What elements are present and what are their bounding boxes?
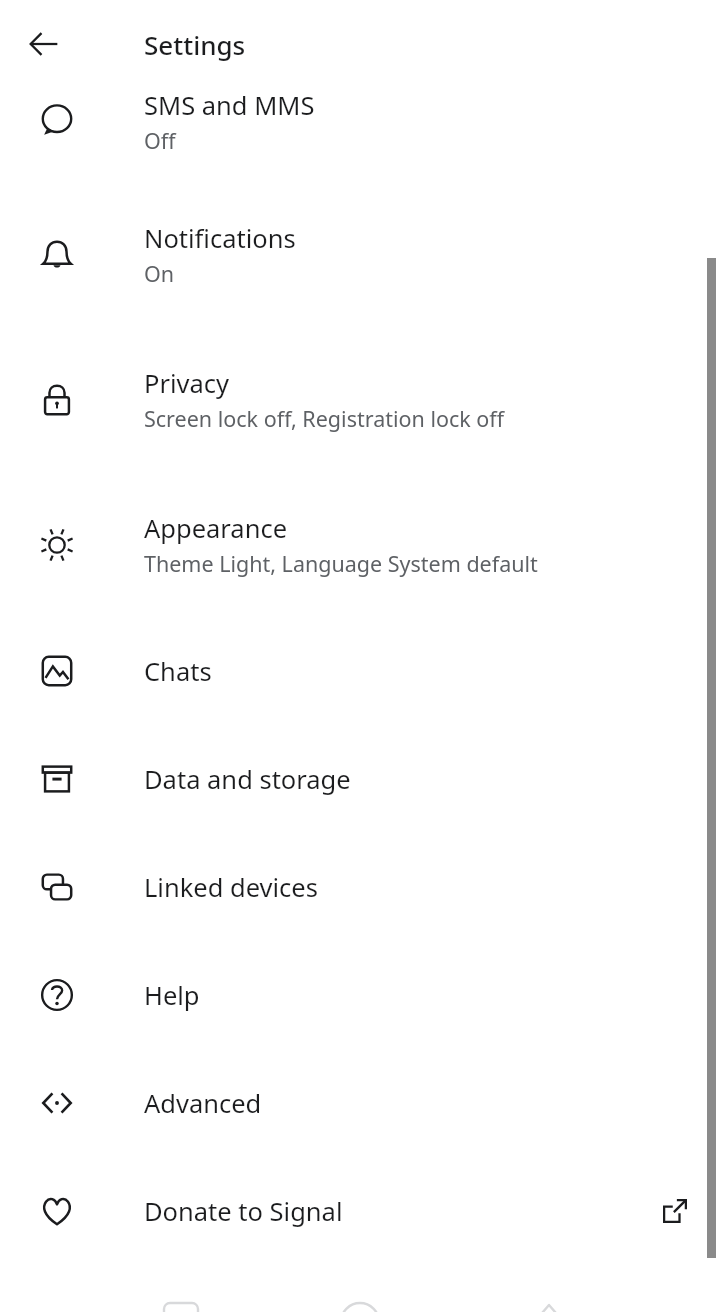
button[interactable]: Chats [0, 617, 720, 725]
button[interactable]: Privacy [0, 327, 720, 472]
button[interactable]: Help [0, 941, 720, 1049]
staticText: Screen lock off, Registration lock off [144, 404, 505, 433]
button[interactable]: SMS and MMS [0, 60, 720, 182]
staticText: Off [144, 126, 176, 155]
staticText: Theme Light, Language System default [144, 549, 538, 578]
button[interactable]: Navigate up [20, 20, 68, 68]
staticText: Help [144, 978, 200, 1013]
staticText: Chats [144, 654, 212, 689]
button[interactable]: Notifications [0, 182, 720, 327]
staticText: Advanced [144, 1086, 262, 1121]
staticText: Notifications [144, 221, 296, 256]
staticText: SMS and MMS [144, 88, 315, 123]
button[interactable]: Linked devices [0, 833, 720, 941]
button[interactable]: Appearance [0, 472, 720, 617]
button[interactable]: Data and storage [0, 725, 720, 833]
staticText: Donate to Signal [144, 1194, 343, 1229]
button[interactable]: Open donate page in browser [647, 1183, 703, 1239]
staticText: Privacy [144, 366, 230, 401]
button[interactable]: Donate to Signal [0, 1157, 720, 1265]
staticText: Linked devices [144, 870, 318, 905]
staticText: Data and storage [144, 762, 351, 797]
staticText: Appearance [144, 511, 288, 546]
button[interactable]: Advanced [0, 1049, 720, 1157]
staticText: Settings [144, 27, 246, 62]
staticText: On [144, 259, 175, 288]
